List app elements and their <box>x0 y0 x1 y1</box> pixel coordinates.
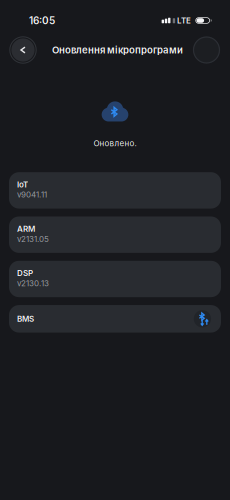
button[interactable]: DSP <box>9 261 221 297</box>
staticText: BMS <box>17 314 34 324</box>
staticText: IoT <box>17 180 28 189</box>
staticText: v2130.13 <box>17 278 49 288</box>
staticText: DSP <box>17 268 33 278</box>
button[interactable]: IoT <box>9 172 221 209</box>
staticText: Оновлено. <box>93 138 136 148</box>
staticText: ARM <box>17 224 35 234</box>
button[interactable]: ARM <box>9 216 221 253</box>
button[interactable]: Back <box>9 36 37 64</box>
staticText: v2131.05 <box>17 234 49 244</box>
staticText: Оновлення мікропрограми <box>52 44 183 56</box>
button[interactable]: Profile <box>193 36 220 63</box>
staticText: v9041.11 <box>17 190 47 200</box>
staticText: LTE <box>177 16 191 25</box>
staticText: 16:05 <box>29 14 55 27</box>
button[interactable]: BMS <box>9 305 221 333</box>
